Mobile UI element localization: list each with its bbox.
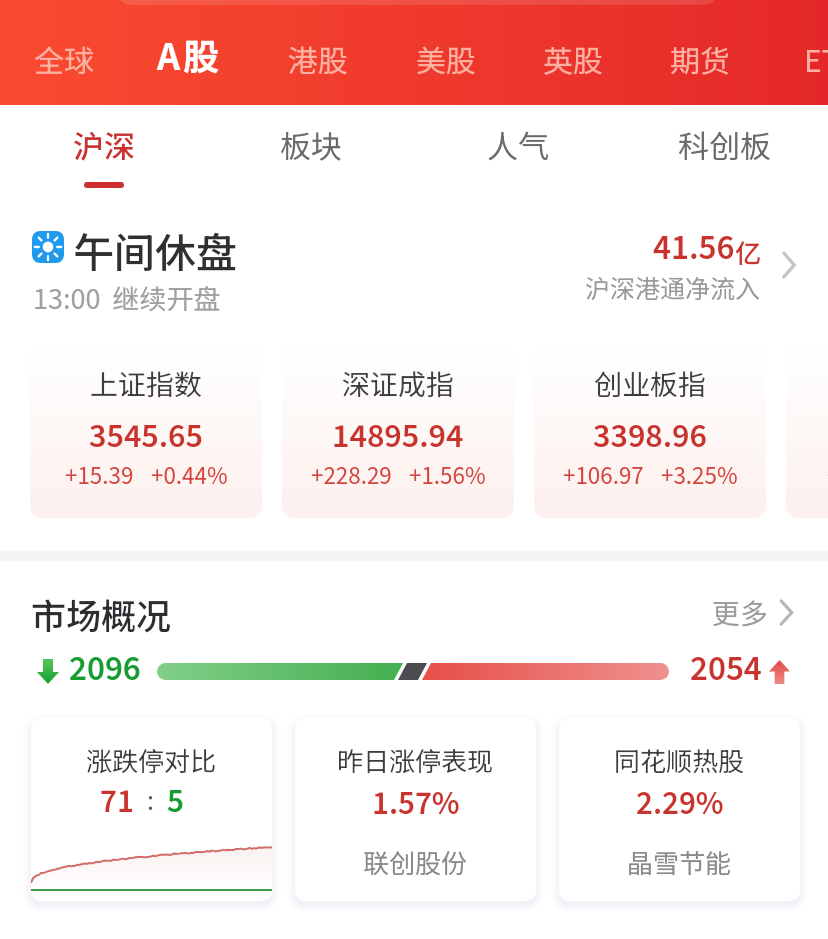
- staticText: +1.56%: [409, 458, 486, 494]
- staticText: 港股: [288, 37, 348, 80]
- staticText: 41.56: [653, 223, 735, 273]
- button[interactable]: 昨日涨停表现: [295, 718, 536, 901]
- button[interactable]: 创业板指: [534, 341, 766, 518]
- button[interactable]: 板块: [207, 105, 414, 195]
- button[interactable]: 更多: [712, 592, 794, 632]
- staticText: 3545.65: [89, 412, 204, 460]
- staticText: 1.57%: [372, 780, 460, 827]
- staticText: 3398.96: [593, 412, 708, 460]
- staticText: 更多: [712, 592, 769, 632]
- button[interactable]: 人气: [414, 105, 621, 195]
- staticText: 板块: [280, 122, 342, 167]
- staticText: +8.10: [827, 458, 828, 494]
- button[interactable]: 上证指数: [30, 341, 262, 518]
- button[interactable]: 美股: [383, 26, 509, 82]
- button[interactable]: 期货: [637, 26, 763, 82]
- staticText: A股: [157, 28, 223, 80]
- button[interactable]: 科创50: [786, 341, 828, 518]
- staticText: 13:00 继续开盘: [33, 278, 221, 317]
- staticText: 昨日涨停表现: [337, 741, 494, 779]
- staticText: 2054: [690, 644, 762, 694]
- staticText: 市场概况: [31, 588, 172, 639]
- staticText: 午间休盘: [73, 220, 237, 279]
- button[interactable]: ETF: [767, 26, 828, 82]
- button[interactable]: 港股: [255, 26, 381, 82]
- staticText: +15.39: [65, 458, 134, 494]
- staticText: 沪深港通净流入: [560, 269, 760, 305]
- staticText: 2096: [69, 644, 141, 694]
- staticText: 科创板: [678, 122, 771, 167]
- staticText: 全球: [34, 37, 94, 80]
- staticText: 联创股份: [363, 843, 468, 881]
- button[interactable]: 全球: [1, 26, 127, 82]
- button[interactable]: 沪深: [0, 105, 207, 195]
- button[interactable]: 科创板: [621, 105, 828, 195]
- staticText: 5: [167, 778, 184, 825]
- button[interactable]: 同花顺热股: [559, 718, 800, 901]
- button[interactable]: 涨跌停对比: [31, 718, 272, 901]
- staticText: 美股: [416, 37, 476, 80]
- staticText: ETF: [804, 37, 828, 80]
- button[interactable]: 深证成指: [282, 341, 514, 518]
- staticText: 同花顺热股: [614, 741, 745, 779]
- staticText: +0.44%: [151, 458, 228, 494]
- staticText: :: [147, 781, 154, 821]
- staticText: 2.29%: [636, 780, 724, 827]
- staticText: +228.29: [311, 458, 392, 494]
- staticText: 14895.94: [332, 412, 464, 460]
- button[interactable]: 午间休盘: [0, 200, 828, 325]
- staticText: 晶雪节能: [627, 843, 732, 881]
- button[interactable]: 英股: [510, 26, 636, 82]
- staticText: 涨跌停对比: [86, 741, 217, 779]
- staticText: 英股: [543, 37, 603, 80]
- button[interactable]: A股: [127, 26, 253, 82]
- staticText: 沪深: [73, 122, 135, 167]
- other: 查看详情: [781, 253, 797, 277]
- staticText: 期货: [670, 37, 730, 80]
- staticText: 人气: [487, 122, 549, 167]
- staticText: 亿: [735, 233, 762, 271]
- staticText: +106.97: [563, 458, 644, 494]
- staticText: 71: [100, 778, 134, 825]
- staticText: 深证成指: [342, 363, 455, 404]
- staticText: +3.25%: [661, 458, 738, 494]
- staticText: 创业板指: [594, 363, 707, 404]
- staticText: 上证指数: [90, 363, 203, 404]
